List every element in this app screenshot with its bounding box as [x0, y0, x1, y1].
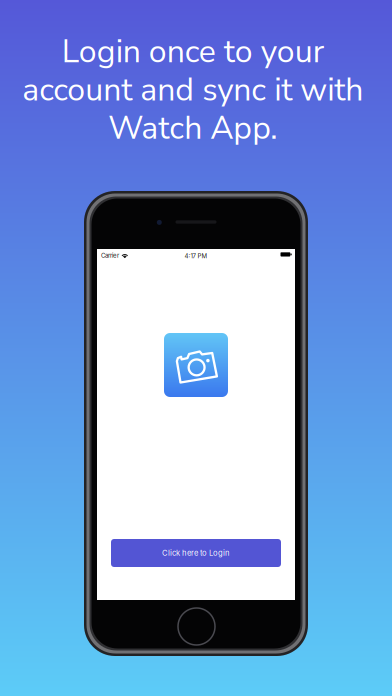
staticText: 4:17 PM	[184, 252, 207, 260]
staticText: Carrier	[101, 252, 119, 259]
staticText: Login once to your account and sync it w…	[22, 30, 363, 150]
staticText: Click here to Login	[162, 548, 230, 558]
button[interactable]: Click here to Login	[111, 539, 281, 567]
